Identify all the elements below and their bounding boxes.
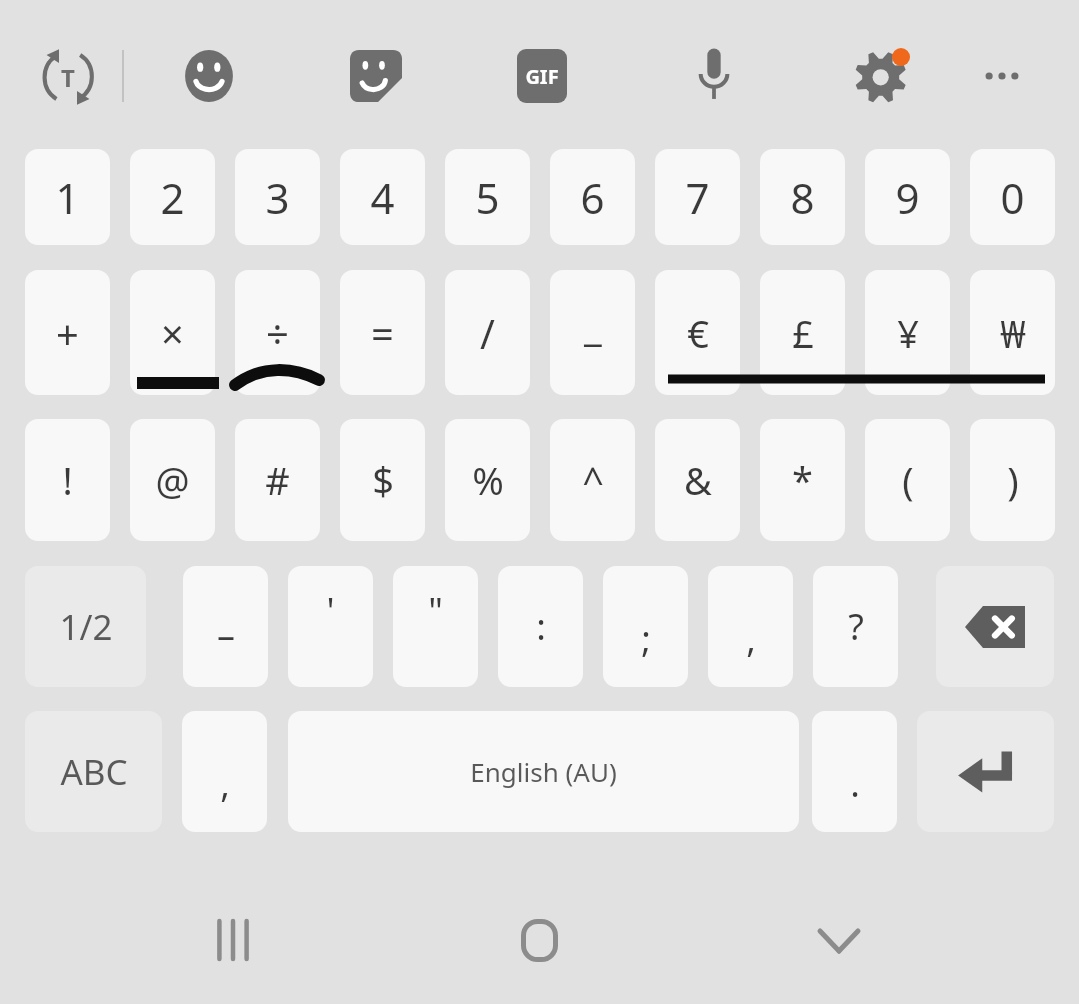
button[interactable]: 4 bbox=[340, 149, 425, 245]
staticText: ( bbox=[902, 454, 914, 506]
button[interactable]: 0 bbox=[970, 149, 1055, 245]
button[interactable]: £ bbox=[760, 270, 845, 395]
staticText: , bbox=[746, 614, 756, 663]
staticText: " bbox=[428, 586, 443, 635]
button[interactable]: GIF bbox=[512, 46, 572, 106]
button[interactable]: 1 bbox=[25, 149, 110, 245]
button[interactable]: Hide keyboard bbox=[789, 890, 889, 990]
button[interactable]: More options bbox=[972, 46, 1032, 106]
button[interactable]: × bbox=[130, 270, 215, 395]
button[interactable]: * bbox=[760, 419, 845, 541]
staticText: 1/2 bbox=[59, 603, 113, 651]
button[interactable]: 3 bbox=[235, 149, 320, 245]
button[interactable]: @ bbox=[130, 419, 215, 541]
staticText: 6 bbox=[580, 169, 605, 226]
staticText: GIF bbox=[525, 63, 559, 90]
staticText: 7 bbox=[685, 169, 710, 226]
button[interactable]: ) bbox=[970, 419, 1055, 541]
staticText: T bbox=[61, 61, 75, 94]
staticText: , bbox=[220, 759, 230, 808]
button[interactable]: Settings bbox=[848, 40, 918, 110]
button[interactable]: ^ bbox=[550, 419, 635, 541]
staticText: . bbox=[850, 759, 860, 808]
staticText: ; bbox=[641, 614, 651, 663]
button[interactable]: ¥ bbox=[865, 270, 950, 395]
button[interactable]: $ bbox=[340, 419, 425, 541]
staticText: 8 bbox=[790, 169, 815, 226]
button[interactable]: 2 bbox=[130, 149, 215, 245]
button[interactable]: & bbox=[655, 419, 740, 541]
staticText: £ bbox=[792, 307, 814, 359]
button[interactable]: ; bbox=[603, 566, 688, 687]
staticText: ) bbox=[1007, 454, 1019, 506]
staticText: % bbox=[472, 454, 504, 506]
button[interactable]: Emoji bbox=[177, 44, 241, 108]
button[interactable]: € bbox=[655, 270, 740, 395]
button[interactable]: Comma bbox=[182, 711, 267, 832]
button[interactable]: ( bbox=[865, 419, 950, 541]
button[interactable]: 5 bbox=[445, 149, 530, 245]
staticText: 9 bbox=[895, 169, 920, 226]
staticText: # bbox=[265, 454, 290, 506]
button[interactable]: Backspace bbox=[936, 566, 1054, 687]
staticText: ₩ bbox=[1000, 307, 1026, 359]
button[interactable]: ₩ bbox=[970, 270, 1055, 395]
staticText: _ bbox=[584, 298, 602, 352]
staticText: – bbox=[217, 610, 235, 659]
button[interactable]: + bbox=[25, 270, 110, 395]
button[interactable]: # bbox=[235, 419, 320, 541]
button[interactable]: / bbox=[445, 270, 530, 395]
staticText: ÷ bbox=[266, 306, 289, 360]
button[interactable]: Translate bbox=[33, 42, 103, 112]
staticText: * bbox=[792, 454, 813, 506]
staticText: 0 bbox=[1000, 169, 1025, 226]
button[interactable]: : bbox=[498, 566, 583, 687]
staticText: : bbox=[536, 602, 546, 651]
button[interactable]: Space, English (AU) bbox=[288, 711, 799, 832]
button[interactable]: 6 bbox=[550, 149, 635, 245]
staticText: English (AU) bbox=[470, 754, 617, 789]
button[interactable]: Page 1 of 2 bbox=[25, 566, 146, 687]
button[interactable]: 9 bbox=[865, 149, 950, 245]
button[interactable]: ABC bbox=[25, 711, 162, 832]
staticText: ? bbox=[848, 602, 864, 651]
staticText: € bbox=[687, 307, 709, 359]
staticText: 1 bbox=[55, 169, 80, 226]
staticText: & bbox=[684, 454, 712, 506]
staticText: / bbox=[480, 306, 495, 360]
staticText: ' bbox=[326, 586, 335, 635]
button[interactable]: = bbox=[340, 270, 425, 395]
staticText: $ bbox=[372, 454, 394, 506]
button[interactable]: Period bbox=[812, 711, 897, 832]
button[interactable]: Enter bbox=[917, 711, 1054, 832]
staticText: ABC bbox=[60, 748, 128, 796]
staticText: 3 bbox=[265, 169, 290, 226]
button[interactable]: Voice input bbox=[682, 42, 746, 106]
button[interactable]: 8 bbox=[760, 149, 845, 245]
button[interactable]: Home bbox=[489, 890, 589, 990]
button[interactable]: _ bbox=[550, 270, 635, 395]
staticText: ! bbox=[62, 454, 73, 506]
button[interactable]: – bbox=[183, 566, 268, 687]
button[interactable]: ' bbox=[288, 566, 373, 687]
staticText: 4 bbox=[370, 169, 395, 226]
staticText: ^ bbox=[582, 454, 604, 506]
staticText: = bbox=[371, 306, 394, 360]
button[interactable]: ! bbox=[25, 419, 110, 541]
staticText: 2 bbox=[160, 169, 185, 226]
button[interactable]: Recents bbox=[183, 890, 283, 990]
staticText: × bbox=[161, 306, 184, 360]
staticText: + bbox=[56, 306, 79, 360]
button[interactable]: 7 bbox=[655, 149, 740, 245]
staticText: 5 bbox=[475, 169, 500, 226]
button[interactable]: ? bbox=[813, 566, 898, 687]
button[interactable]: % bbox=[445, 419, 530, 541]
button[interactable]: ÷ bbox=[235, 270, 320, 395]
button[interactable]: Stickers bbox=[344, 44, 408, 108]
staticText: ¥ bbox=[897, 307, 919, 359]
button[interactable]: , bbox=[708, 566, 793, 687]
button[interactable]: " bbox=[393, 566, 478, 687]
staticText: @ bbox=[155, 454, 190, 506]
